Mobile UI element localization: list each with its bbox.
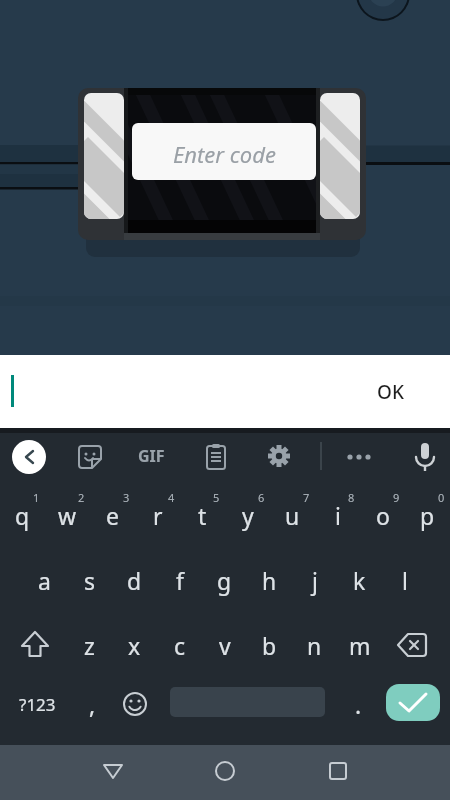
button[interactable]: q [0, 483, 45, 547]
staticText: r [153, 500, 163, 531]
staticText: e [106, 500, 119, 531]
button[interactable]: ?123 [9, 672, 65, 736]
button[interactable]: l [382, 548, 427, 612]
button[interactable]: s [67, 548, 112, 612]
staticText: 2 [78, 490, 85, 505]
staticText: g [217, 565, 232, 596]
staticText: q [15, 500, 30, 531]
button[interactable]: c [157, 613, 202, 677]
staticText: m [349, 630, 371, 661]
button[interactable]: z [67, 613, 112, 677]
staticText: j [312, 565, 318, 596]
button[interactable]: p [405, 483, 450, 547]
staticText: Enter code [173, 139, 276, 169]
button[interactable]: i [315, 483, 360, 547]
staticText: f [176, 565, 184, 596]
staticText: t [198, 500, 207, 531]
staticText: , [89, 689, 96, 720]
staticText: o [376, 500, 390, 531]
button[interactable] [401, 428, 447, 484]
staticText: . [355, 689, 362, 720]
button[interactable] [113, 672, 158, 736]
button[interactable]: a [22, 548, 67, 612]
button[interactable]: n [292, 613, 337, 677]
button[interactable] [193, 428, 239, 484]
button[interactable] [85, 745, 141, 800]
staticText: a [38, 565, 51, 596]
staticText: p [420, 500, 435, 531]
button[interactable]: GIF [128, 428, 174, 484]
staticText: d [127, 565, 142, 596]
button[interactable]: . [336, 672, 380, 736]
staticText: 3 [123, 490, 130, 505]
staticText: b [262, 630, 277, 661]
staticText: h [262, 565, 277, 596]
button[interactable]: j [292, 548, 337, 612]
button[interactable]: w [45, 483, 90, 547]
button[interactable] [386, 684, 440, 721]
button[interactable] [197, 745, 253, 800]
staticText: 7 [303, 490, 310, 505]
staticText: 5 [213, 490, 220, 505]
staticText: 1 [33, 490, 40, 505]
button[interactable]: g [202, 548, 247, 612]
button[interactable] [256, 428, 302, 484]
button[interactable] [8, 613, 64, 677]
staticText: z [84, 630, 95, 661]
staticText: s [84, 565, 96, 596]
button[interactable]: x [112, 613, 157, 677]
button[interactable]: m [337, 613, 382, 677]
staticText: c [174, 630, 186, 661]
staticText: 9 [393, 490, 400, 505]
button[interactable]: u [270, 483, 315, 547]
button[interactable]: v [202, 613, 247, 677]
button[interactable]: b [247, 613, 292, 677]
button[interactable]: f [157, 548, 202, 612]
staticText: k [353, 565, 366, 596]
staticText: n [307, 630, 322, 661]
button[interactable] [385, 613, 441, 677]
staticText: 4 [168, 490, 175, 505]
button[interactable] [336, 428, 382, 484]
staticText: i [335, 500, 341, 531]
staticText: 8 [348, 490, 355, 505]
staticText: w [58, 500, 77, 531]
staticText: ?123 [19, 693, 56, 716]
button[interactable] [6, 428, 52, 484]
button[interactable]: o [360, 483, 405, 547]
button[interactable]: e [90, 483, 135, 547]
button[interactable] [64, 428, 110, 484]
button[interactable] [128, 428, 174, 484]
staticText: 0 [438, 490, 445, 505]
button[interactable]: t [180, 483, 225, 547]
button[interactable] [310, 745, 366, 800]
button[interactable]: , [70, 672, 114, 736]
staticText: y [242, 500, 254, 531]
staticText: v [219, 630, 231, 661]
button[interactable]: k [337, 548, 382, 612]
staticText: u [285, 500, 300, 531]
button[interactable]: OK [360, 365, 420, 419]
staticText: GIF [138, 445, 165, 467]
button[interactable]: d [112, 548, 157, 612]
button[interactable]: y [225, 483, 270, 547]
button[interactable]: r [135, 483, 180, 547]
staticText: l [402, 565, 408, 596]
staticText: OK [377, 379, 404, 405]
staticText: x [128, 630, 141, 661]
button[interactable]: h [247, 548, 292, 612]
staticText: 6 [258, 490, 265, 505]
